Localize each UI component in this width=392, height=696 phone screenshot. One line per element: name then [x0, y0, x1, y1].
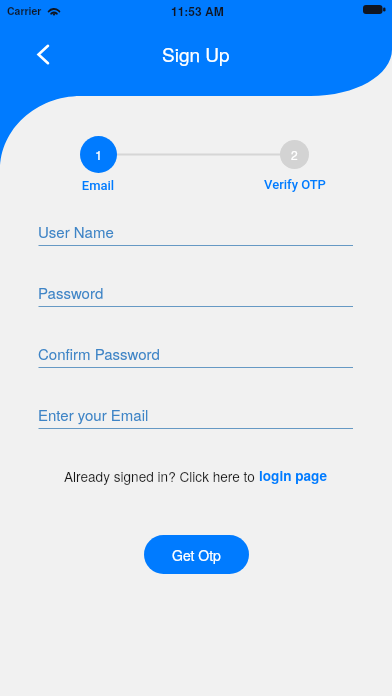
- button[interactable]: Back: [28, 38, 60, 70]
- staticText: Get Otp: [172, 545, 221, 565]
- staticText: Confirm Password: [38, 343, 160, 364]
- button[interactable]: login page: [259, 466, 328, 485]
- staticText: 11:53 AM: [171, 2, 224, 19]
- button[interactable]: 2: [280, 140, 309, 169]
- staticText: Sign Up: [162, 40, 230, 67]
- staticText: Email: [78, 178, 118, 193]
- staticText: User Name: [38, 221, 114, 242]
- staticText: Verify OTP: [263, 177, 327, 192]
- staticText: 2: [291, 146, 298, 163]
- staticText: Enter your Email: [38, 404, 149, 425]
- staticText: Carrier: [7, 3, 42, 18]
- staticText: 1: [95, 145, 103, 164]
- button[interactable]: 1: [80, 136, 117, 173]
- staticText: Password: [38, 282, 104, 303]
- staticText: Already signed in? Click here to: [64, 466, 259, 485]
- button[interactable]: Get Otp: [144, 535, 249, 574]
